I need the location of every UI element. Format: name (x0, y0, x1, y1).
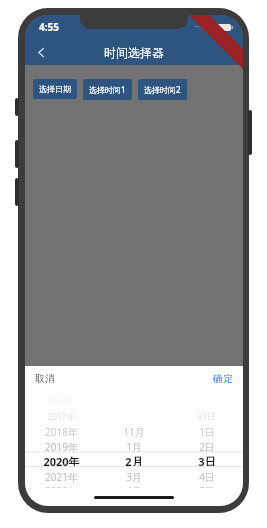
staticText: 选择日期 (39, 84, 71, 94)
staticText: 2018年 (45, 425, 78, 439)
button[interactable]: Back (31, 42, 51, 62)
staticText: 确定 (213, 372, 233, 385)
staticText: 1月 (126, 440, 142, 454)
staticText: 选择时间2 (144, 84, 181, 95)
staticText: 4月 (126, 484, 142, 488)
staticText: 2020年 (43, 454, 80, 469)
staticText: 时间选择器 (104, 45, 164, 60)
staticText: 5日 (199, 484, 215, 488)
staticText: 3月 (126, 470, 142, 484)
staticText: 31日 (197, 411, 216, 423)
staticText: 2017年 (47, 411, 75, 423)
button[interactable]: 确定 (205, 368, 243, 389)
staticText: 2日 (199, 440, 215, 454)
staticText: •••• (194, 24, 202, 31)
staticText: 2021年 (45, 470, 78, 484)
staticText: 1日 (199, 425, 215, 439)
staticText: 11月 (123, 425, 145, 439)
staticText: 3日 (198, 454, 216, 469)
staticText: 选择时间1 (89, 84, 126, 95)
staticText: 2022年 (45, 484, 78, 488)
staticText: 2月 (125, 454, 143, 469)
staticText: 2019年 (45, 440, 78, 454)
staticText: 取消 (35, 372, 55, 385)
staticText: 4日 (199, 470, 215, 484)
button[interactable]: 取消 (25, 368, 63, 389)
button[interactable]: 选择时间2 (138, 79, 187, 100)
staticText: 2016年 (49, 397, 73, 407)
staticText: 4:55 (39, 20, 59, 34)
button[interactable]: 选择日期 (33, 79, 77, 99)
button[interactable]: 选择时间1 (83, 79, 132, 100)
